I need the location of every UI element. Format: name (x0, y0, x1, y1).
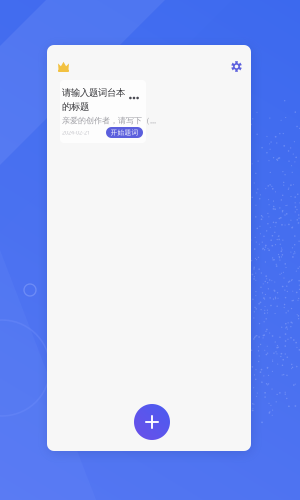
button[interactable]: 请输入题词台本的标题 (60, 80, 146, 143)
button[interactable]: More options (129, 94, 139, 102)
button[interactable]: VIP membership (58, 61, 69, 72)
staticText: 2024-02-21 (62, 129, 90, 136)
staticText: 开始题词 (110, 128, 138, 137)
button[interactable]: Settings (231, 61, 242, 72)
staticText: 亲爱的创作者，请写下（... (62, 115, 156, 126)
button[interactable]: 开始题词 (106, 127, 143, 138)
button[interactable]: Create new script (134, 404, 170, 440)
staticText: 请输入题词台本的标题 (62, 87, 125, 112)
